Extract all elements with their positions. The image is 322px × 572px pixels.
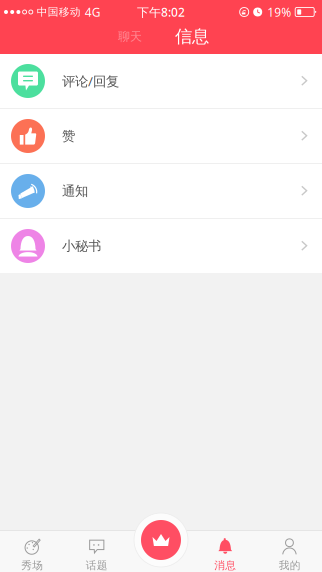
button[interactable]: 评论/回复: [0, 54, 322, 109]
staticText: 话题: [86, 559, 108, 572]
staticText: 下午8:02: [137, 4, 185, 20]
staticText: 19%: [267, 4, 291, 20]
button[interactable]: 赞: [0, 109, 322, 164]
button[interactable]: 聊天: [104, 21, 156, 51]
staticText: 小秘书: [62, 238, 101, 254]
button[interactable]: 通知: [0, 164, 322, 219]
staticText: 中国移动: [37, 5, 81, 18]
button[interactable]: 信息: [166, 21, 218, 51]
button[interactable]: 话题: [64, 530, 129, 572]
staticText: 消息: [214, 559, 236, 572]
staticText: 评论/回复: [62, 72, 119, 90]
staticText: 赞: [62, 128, 75, 144]
staticText: 4G: [85, 4, 101, 20]
staticText: 信息: [175, 26, 209, 47]
button[interactable]: 我的: [257, 530, 322, 572]
button[interactable]: Publish: [133, 512, 189, 568]
button[interactable]: 小秘书: [0, 219, 322, 273]
button[interactable]: 消息: [193, 530, 257, 572]
staticText: 秀场: [21, 559, 43, 572]
staticText: 通知: [62, 183, 88, 199]
staticText: 我的: [279, 559, 301, 572]
button[interactable]: 秀场: [0, 530, 64, 572]
staticText: 聊天: [118, 29, 142, 44]
